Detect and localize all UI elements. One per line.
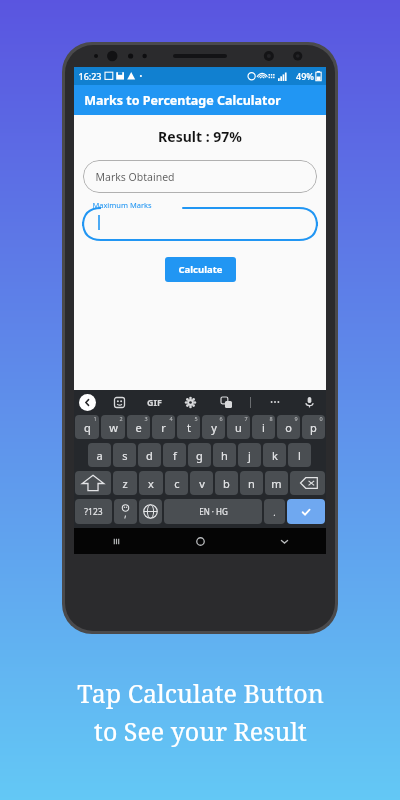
button[interactable]: p	[302, 415, 325, 439]
button[interactable]: More options	[267, 394, 283, 410]
button[interactable]: Backspace	[290, 471, 325, 495]
staticText: Calculate	[178, 263, 223, 276]
button[interactable]: e	[127, 415, 150, 439]
staticText: Tap Calculate Button	[77, 676, 324, 710]
staticText: 7	[244, 415, 248, 422]
staticText: g	[196, 448, 203, 463]
staticText: Marks to Percentage Calculator	[84, 92, 281, 109]
staticText: to See your Result	[94, 714, 307, 748]
staticText: y	[211, 420, 217, 435]
staticText: q	[84, 420, 91, 435]
button[interactable]: n	[240, 471, 263, 495]
staticText: EN · HG	[199, 506, 228, 517]
button[interactable]: b	[215, 471, 238, 495]
button[interactable]: y	[202, 415, 225, 439]
button[interactable]: Calculate	[165, 257, 236, 282]
staticText: v	[199, 476, 205, 491]
button[interactable]: s	[113, 443, 136, 467]
staticText: 5	[194, 415, 198, 422]
staticText: d	[146, 448, 153, 463]
button[interactable]: Settings	[182, 394, 198, 410]
button[interactable]: a	[88, 443, 111, 467]
button[interactable]: o	[277, 415, 300, 439]
staticText: w	[109, 420, 118, 435]
staticText: 0	[319, 415, 323, 422]
button[interactable]: EN · HG	[164, 499, 262, 524]
staticText: 16:23	[78, 70, 102, 82]
button[interactable]: Recents	[74, 528, 158, 554]
staticText: .	[273, 506, 276, 518]
staticText: p	[310, 420, 317, 435]
staticText: i	[262, 420, 265, 435]
button[interactable]: Translate	[218, 394, 234, 410]
button[interactable]: k	[263, 443, 286, 467]
button[interactable]: c	[165, 471, 188, 495]
staticText: u	[235, 420, 242, 435]
button[interactable]: Stickers	[111, 394, 127, 410]
button[interactable]: q	[75, 415, 99, 439]
staticText: Marks Obtained	[95, 170, 175, 184]
button[interactable]: r	[152, 415, 175, 439]
button[interactable]: GIF	[147, 396, 162, 408]
button[interactable]: h	[213, 443, 236, 467]
staticText: ?123	[84, 506, 103, 518]
staticText: 8	[269, 415, 273, 422]
button[interactable]: Hide keyboard	[242, 528, 326, 554]
staticText: s	[122, 448, 128, 463]
button[interactable]: z	[113, 471, 137, 495]
button[interactable]: i	[252, 415, 275, 439]
button[interactable]: Change language	[139, 499, 162, 524]
button[interactable]: x	[139, 471, 163, 495]
button[interactable]: Voice input	[301, 394, 317, 410]
staticText: c	[174, 476, 180, 491]
staticText: Result : 97%	[158, 127, 242, 146]
staticText: 49%	[296, 70, 314, 82]
button[interactable]: f	[163, 443, 186, 467]
button[interactable]: Marks Obtained	[83, 160, 317, 193]
button[interactable]: ?123	[75, 499, 112, 524]
staticText: 3	[144, 415, 148, 422]
staticText: x	[148, 476, 154, 491]
staticText: z	[122, 476, 128, 491]
staticText: 6	[219, 415, 223, 422]
button[interactable]: Home	[158, 528, 242, 554]
button[interactable]: j	[238, 443, 261, 467]
button[interactable]: l	[288, 443, 311, 467]
staticText: 1	[93, 415, 97, 422]
staticText: t	[187, 420, 191, 435]
button[interactable]: Back	[79, 394, 96, 411]
button[interactable]: t	[177, 415, 200, 439]
button[interactable]: d	[138, 443, 161, 467]
button[interactable]: w	[101, 415, 125, 439]
button[interactable]: Enter	[287, 499, 325, 524]
staticText: o	[285, 420, 292, 435]
staticText: n	[248, 476, 255, 491]
button[interactable]: Shift	[75, 471, 111, 495]
button[interactable]: .	[264, 499, 285, 524]
staticText: j	[248, 448, 251, 463]
staticText: Maximum Marks	[92, 200, 152, 210]
staticText: f	[173, 448, 177, 463]
staticText: r	[161, 420, 166, 435]
button[interactable]: m	[265, 471, 288, 495]
staticText: a	[96, 448, 103, 463]
staticText: l	[298, 448, 301, 463]
staticText: GIF	[147, 396, 162, 408]
staticText: 4	[169, 415, 173, 422]
staticText: m	[271, 476, 282, 491]
button[interactable]: g	[188, 443, 211, 467]
staticText: 9	[294, 415, 298, 422]
button[interactable]: v	[190, 471, 213, 495]
staticText: h	[221, 448, 228, 463]
staticText: 2	[119, 415, 123, 422]
staticText: b	[223, 476, 230, 491]
staticText: e	[135, 420, 142, 435]
staticText: k	[272, 448, 278, 463]
button[interactable]: u	[227, 415, 250, 439]
button[interactable]: Emoji and comma	[114, 499, 137, 524]
button[interactable]: Marks to Percentage Calculator	[74, 85, 326, 115]
